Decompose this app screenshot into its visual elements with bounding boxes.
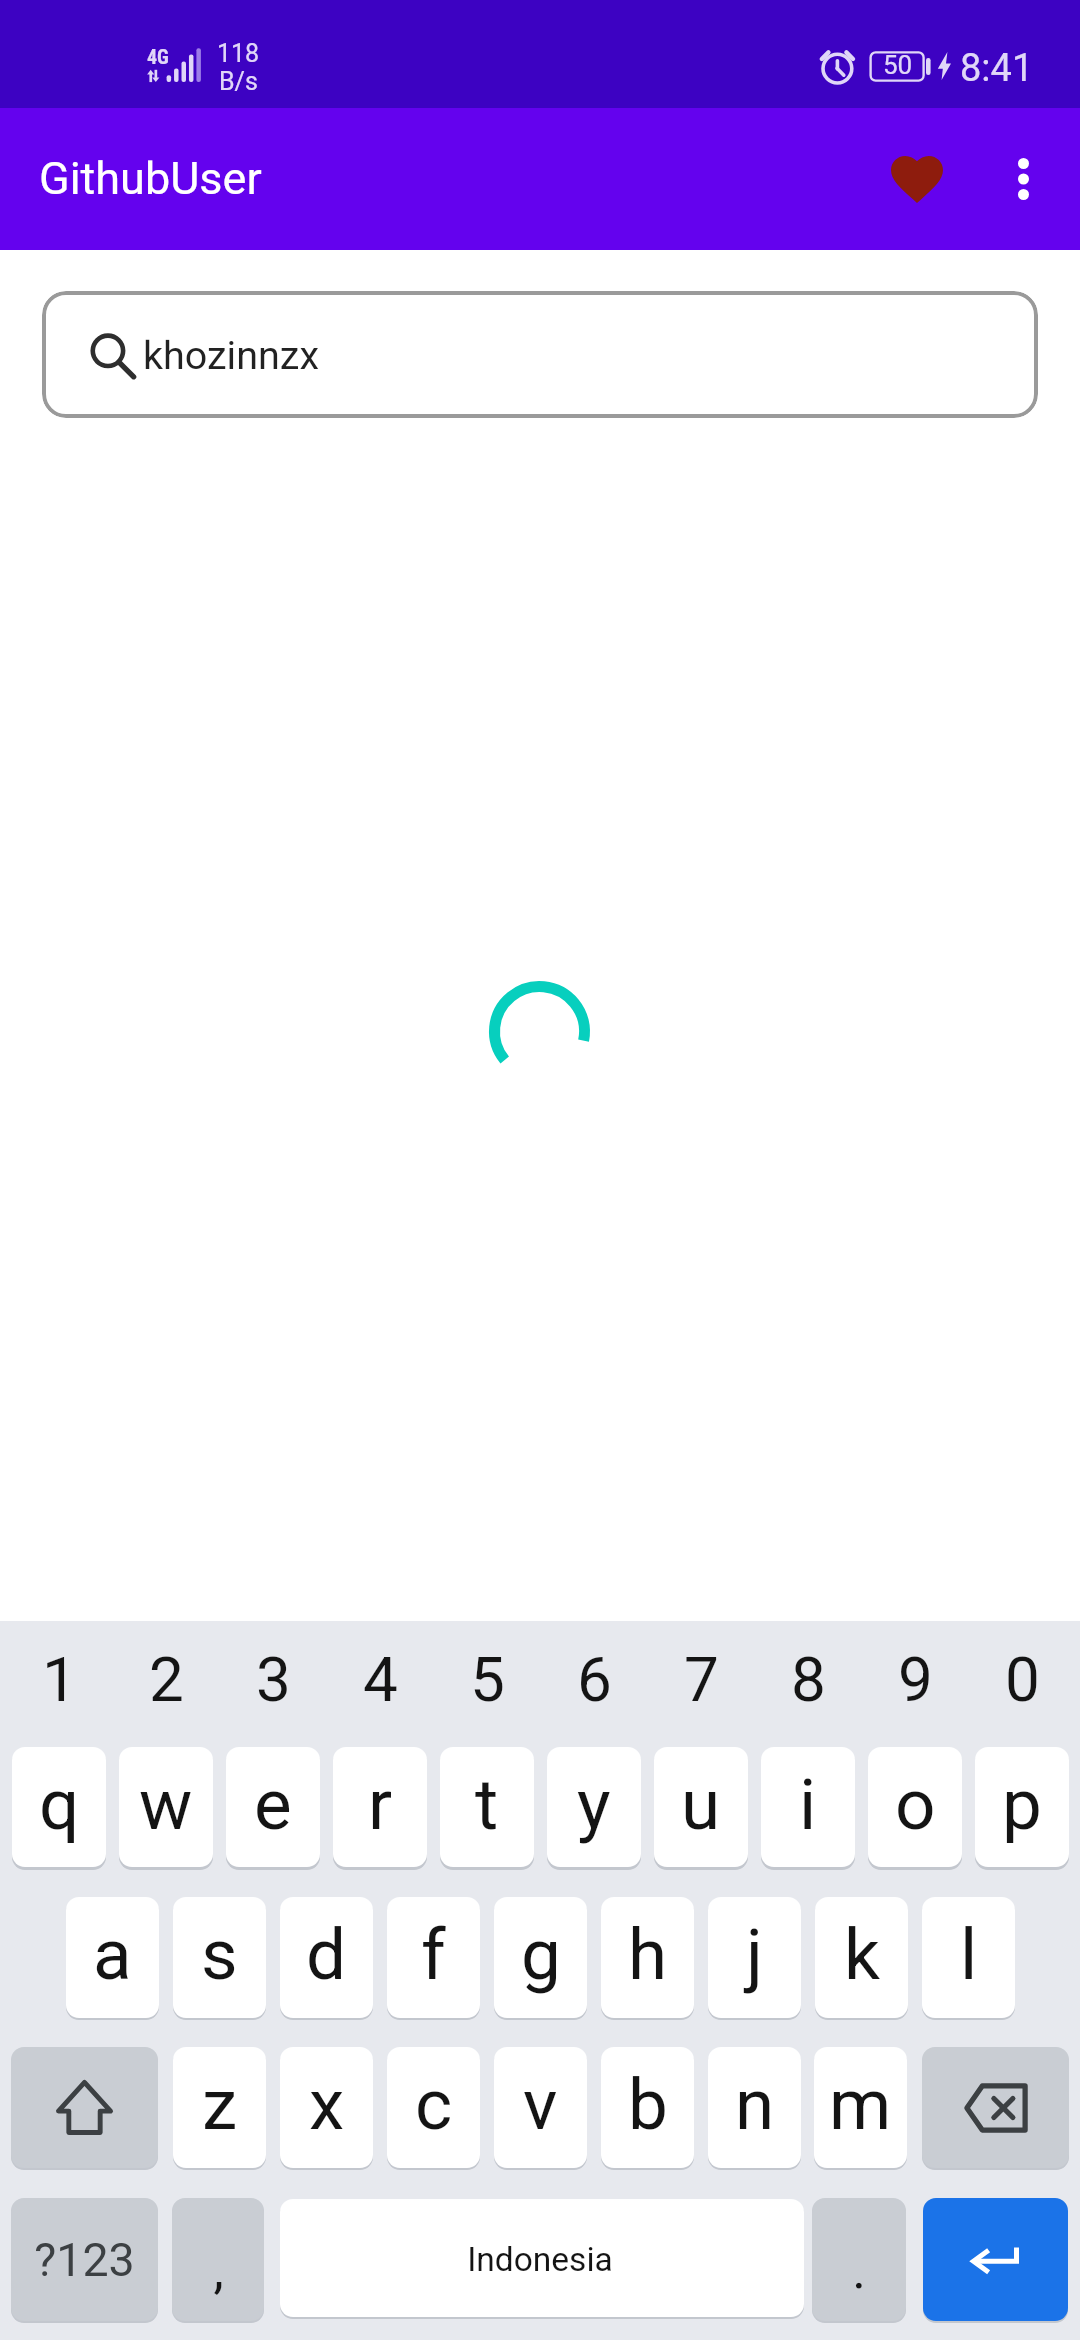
button[interactable]: s — [173, 1897, 266, 2018]
staticText: k — [844, 1913, 880, 1996]
button[interactable]: 1 — [12, 1621, 106, 1749]
staticText: 9 — [898, 1643, 933, 1716]
staticText: o — [895, 1763, 936, 1846]
staticText: 3 — [256, 1643, 291, 1716]
button[interactable]: 3 — [226, 1621, 320, 1749]
staticText: GithubUser — [39, 152, 262, 205]
button[interactable]: j — [708, 1897, 801, 2018]
button[interactable]: i — [761, 1747, 855, 1867]
staticText: 50 — [883, 50, 913, 80]
button[interactable]: 6 — [547, 1621, 641, 1749]
staticText: B/s — [219, 67, 258, 96]
staticText: e — [254, 1763, 292, 1846]
staticText: z — [202, 2063, 238, 2146]
button[interactable]: Favorites — [857, 119, 977, 239]
button[interactable]: o — [868, 1747, 962, 1867]
staticText: 2 — [149, 1643, 184, 1716]
staticText: q — [39, 1763, 80, 1846]
staticText: Indonesia — [467, 2240, 613, 2279]
staticText: v — [523, 2063, 558, 2146]
staticText: 118 — [217, 39, 260, 68]
staticText: g — [521, 1913, 561, 1996]
button[interactable]: k — [815, 1897, 908, 2018]
button[interactable]: g — [494, 1897, 587, 2018]
button[interactable]: y — [547, 1747, 641, 1867]
button[interactable]: 7 — [654, 1621, 748, 1749]
button[interactable]: x — [280, 2047, 373, 2168]
button[interactable]: Backspace — [922, 2047, 1069, 2168]
staticText: c — [415, 2063, 453, 2146]
button[interactable]: 4 — [333, 1621, 427, 1749]
staticText: m — [829, 2063, 892, 2146]
staticText: , — [213, 2240, 224, 2301]
staticText: 5 — [470, 1643, 505, 1716]
button[interactable]: r — [333, 1747, 427, 1867]
button[interactable]: 2 — [119, 1621, 213, 1749]
button[interactable]: q — [12, 1747, 106, 1867]
staticText: 4 — [363, 1643, 398, 1716]
staticText: . — [852, 2240, 866, 2301]
button[interactable]: l — [922, 1897, 1015, 2018]
staticText: l — [960, 1913, 978, 1996]
button[interactable]: f — [387, 1897, 480, 2018]
button[interactable]: b — [601, 2047, 694, 2168]
staticText: f — [421, 1913, 446, 1996]
staticText: b — [628, 2063, 668, 2146]
button[interactable]: Indonesia — [280, 2199, 804, 2317]
staticText: s — [201, 1913, 238, 1996]
button[interactable]: More options — [966, 122, 1080, 236]
staticText: 6 — [577, 1643, 612, 1716]
button[interactable]: p — [975, 1747, 1069, 1867]
staticText: i — [799, 1763, 817, 1846]
staticText: u — [681, 1763, 721, 1846]
button[interactable]: , — [172, 2198, 264, 2321]
button[interactable]: d — [280, 1897, 373, 2018]
staticText: khozinnzx — [143, 332, 320, 378]
button[interactable]: h — [601, 1897, 694, 2018]
staticText: 8 — [791, 1643, 826, 1716]
staticText: r — [368, 1763, 393, 1846]
button[interactable]: w — [119, 1747, 213, 1867]
staticText: w — [139, 1763, 193, 1846]
button[interactable]: ?123 — [11, 2198, 158, 2321]
button[interactable]: Enter — [923, 2198, 1068, 2321]
staticText: a — [93, 1913, 132, 1996]
button[interactable]: t — [440, 1747, 534, 1867]
button[interactable]: c — [387, 2047, 480, 2168]
staticText: 4G — [147, 45, 169, 68]
button[interactable]: a — [66, 1897, 159, 2018]
staticText: 7 — [684, 1643, 719, 1716]
button[interactable]: khozinnzx — [42, 291, 1038, 418]
staticText: h — [628, 1913, 668, 1996]
button[interactable]: n — [708, 2047, 801, 2168]
button[interactable]: m — [814, 2047, 907, 2168]
button[interactable]: Shift — [11, 2047, 158, 2168]
button[interactable]: 9 — [868, 1621, 962, 1749]
staticText: 8:41 — [960, 46, 1034, 91]
staticText: j — [746, 1913, 763, 1996]
button[interactable]: e — [226, 1747, 320, 1867]
button[interactable]: 8 — [761, 1621, 855, 1749]
staticText: 0 — [1005, 1643, 1040, 1716]
staticText: n — [735, 2063, 775, 2146]
button[interactable]: 5 — [440, 1621, 534, 1749]
staticText: 1 — [42, 1643, 77, 1716]
button[interactable]: u — [654, 1747, 748, 1867]
staticText: ?123 — [34, 2233, 135, 2287]
staticText: y — [577, 1763, 611, 1846]
staticText: x — [309, 2063, 345, 2146]
button[interactable]: z — [173, 2047, 266, 2168]
button[interactable]: v — [494, 2047, 587, 2168]
staticText: d — [306, 1913, 347, 1996]
staticText: p — [1002, 1763, 1042, 1846]
button[interactable]: 0 — [975, 1621, 1069, 1749]
staticText: t — [475, 1763, 499, 1846]
button[interactable]: . — [812, 2198, 906, 2321]
